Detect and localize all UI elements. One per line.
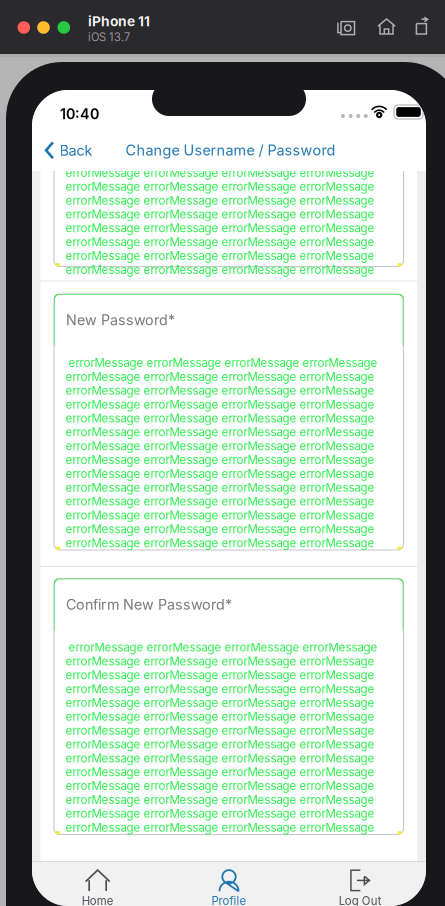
staticText: errorMessage errorMessage errorMessage e… [65, 370, 374, 384]
staticText: errorMessage errorMessage errorMessage e… [65, 180, 374, 194]
staticText: errorMessage errorMessage errorMessage e… [65, 751, 374, 765]
staticText: errorMessage errorMessage errorMessage e… [65, 640, 377, 654]
staticText: errorMessage errorMessage errorMessage e… [65, 263, 374, 277]
staticText: errorMessage errorMessage errorMessage e… [65, 384, 374, 398]
staticText: errorMessage errorMessage errorMessage e… [65, 536, 374, 550]
staticText: errorMessage errorMessage errorMessage e… [65, 668, 374, 682]
staticText: errorMessage errorMessage errorMessage e… [65, 152, 374, 166]
staticText: errorMessage errorMessage errorMessage e… [65, 654, 374, 668]
staticText: errorMessage errorMessage errorMessage e… [65, 724, 374, 737]
button[interactable]: Screenshot [331, 13, 362, 42]
staticText: errorMessage errorMessage errorMessage e… [65, 453, 374, 467]
staticText: errorMessage errorMessage errorMessage e… [65, 710, 374, 724]
staticText: errorMessage errorMessage errorMessage e… [65, 481, 374, 494]
staticText: errorMessage errorMessage errorMessage e… [65, 207, 374, 221]
staticText: 10:40 [60, 105, 99, 123]
staticText: errorMessage errorMessage errorMessage e… [65, 765, 374, 779]
button[interactable]: Home [371, 12, 402, 41]
staticText: errorMessage errorMessage errorMessage e… [65, 696, 374, 710]
staticText: errorMessage errorMessage errorMessage e… [65, 508, 374, 522]
staticText: errorMessage errorMessage errorMessage e… [65, 682, 374, 696]
button[interactable]: Home [32, 869, 163, 906]
staticText: Profile [211, 894, 246, 906]
staticText: errorMessage errorMessage errorMessage e… [65, 249, 374, 263]
staticText: errorMessage errorMessage errorMessage e… [65, 235, 374, 249]
staticText: iPhone 11 [88, 13, 150, 30]
staticText: Confirm New Password* [66, 596, 232, 613]
button[interactable]: Rotate [409, 12, 435, 41]
staticText: errorMessage errorMessage errorMessage e… [65, 439, 374, 453]
staticText: Home [82, 894, 114, 906]
staticText: Back [59, 142, 92, 159]
staticText: errorMessage errorMessage errorMessage e… [65, 820, 374, 834]
staticText: Change Username / Password [125, 141, 335, 159]
staticText: errorMessage errorMessage errorMessage e… [65, 737, 374, 751]
staticText: errorMessage errorMessage errorMessage e… [65, 522, 374, 536]
button[interactable]: Back [36, 134, 100, 167]
button[interactable]: Profile [163, 869, 295, 906]
staticText: errorMessage errorMessage errorMessage e… [65, 397, 374, 411]
staticText: errorMessage errorMessage errorMessage e… [65, 411, 374, 425]
staticText: iOS 13.7 [88, 31, 130, 44]
staticText: errorMessage errorMessage errorMessage e… [65, 494, 374, 508]
staticText: errorMessage errorMessage errorMessage e… [65, 779, 374, 793]
staticText: errorMessage errorMessage errorMessage e… [65, 793, 374, 807]
staticText: errorMessage errorMessage errorMessage e… [65, 807, 374, 821]
staticText: Log Out [339, 894, 382, 906]
button[interactable]: Log Out [295, 869, 426, 906]
staticText: errorMessage errorMessage errorMessage e… [65, 356, 377, 370]
staticText: New Password* [66, 311, 175, 329]
staticText: errorMessage errorMessage errorMessage e… [65, 166, 374, 180]
staticText: errorMessage errorMessage errorMessage e… [65, 193, 374, 207]
staticText: errorMessage errorMessage errorMessage e… [65, 221, 374, 235]
staticText: errorMessage errorMessage errorMessage e… [65, 425, 374, 439]
staticText: errorMessage errorMessage errorMessage e… [65, 467, 374, 481]
